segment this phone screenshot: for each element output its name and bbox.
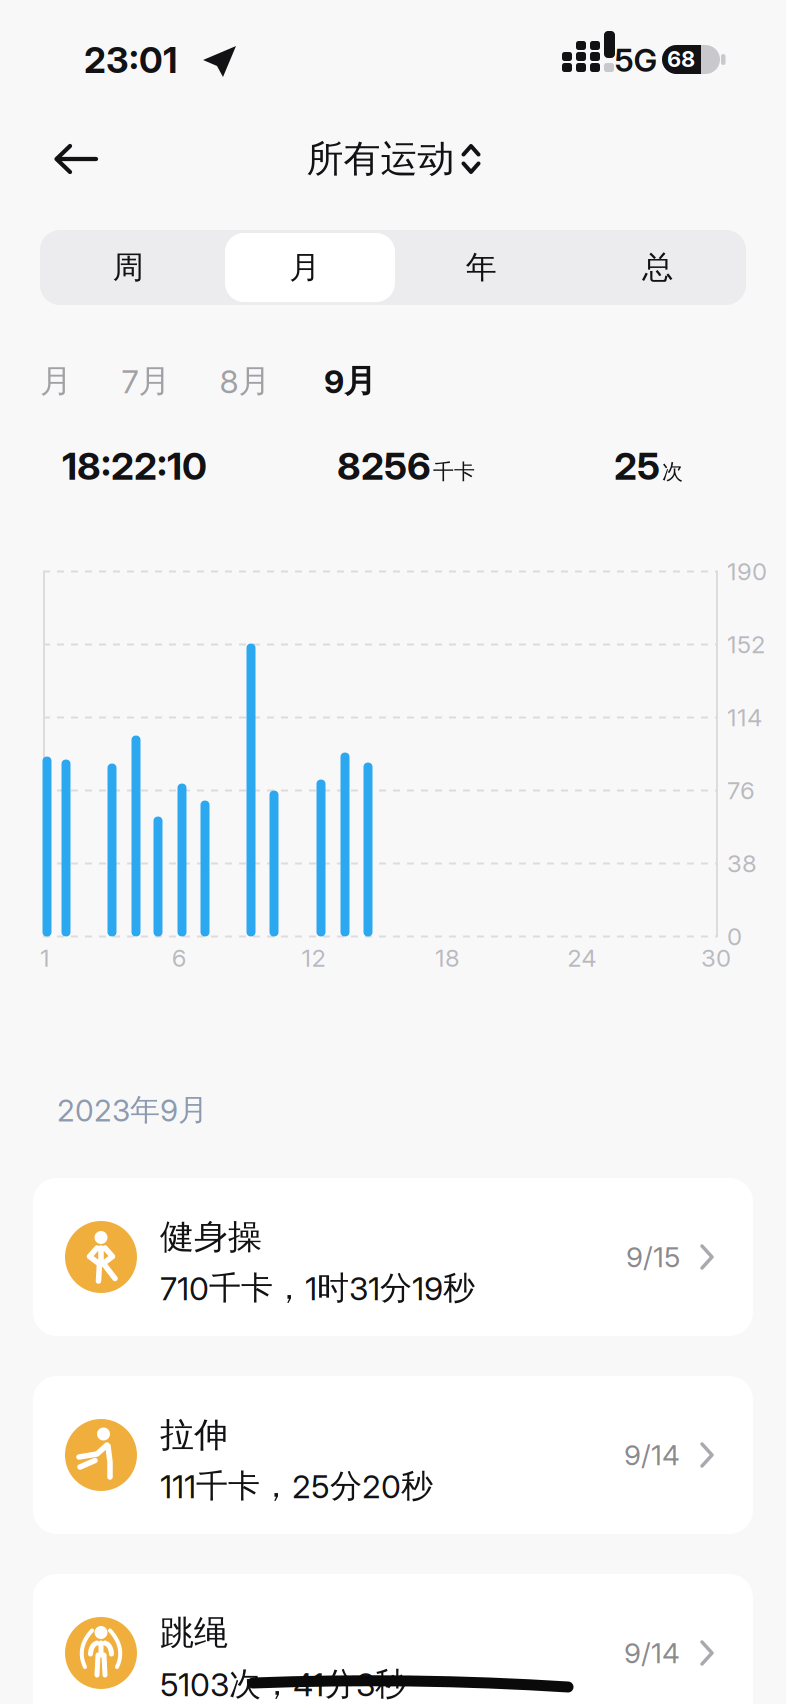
button[interactable]: Back: [0, 0, 120, 120]
staticText: 1: [40, 943, 50, 972]
button[interactable]: 总: [569, 230, 746, 305]
staticText: 24: [567, 943, 596, 972]
staticText: 30: [701, 943, 731, 972]
staticText: 拉伸: [160, 1414, 228, 1456]
staticText: 8256: [337, 443, 431, 489]
staticText: 18:22:10: [62, 443, 207, 489]
button[interactable]: 年: [393, 230, 569, 305]
staticText: 0: [727, 922, 742, 951]
staticText: 18: [435, 943, 460, 972]
staticText: 所有运动: [306, 136, 454, 182]
staticText: 次: [662, 458, 683, 485]
staticText: 月: [289, 248, 320, 287]
staticText: 111千卡，25分20秒: [160, 1466, 433, 1506]
staticText: 152: [727, 630, 765, 659]
staticText: 9/14: [624, 1438, 680, 1472]
button[interactable]: 跳绳: [33, 1574, 753, 1704]
staticText: 5G: [614, 41, 657, 79]
staticText: 9/15: [626, 1240, 680, 1274]
staticText: 周: [113, 248, 144, 287]
staticText: 7月: [121, 361, 170, 401]
staticText: 8月: [219, 361, 270, 401]
staticText: 9月: [324, 361, 376, 401]
staticText: 月: [40, 361, 72, 401]
staticText: 23:01: [84, 38, 177, 82]
staticText: 健身操: [160, 1216, 262, 1258]
button[interactable]: 周: [40, 230, 216, 305]
staticText: 12: [301, 943, 325, 972]
staticText: 跳绳: [160, 1612, 228, 1654]
staticText: 5103次，41分3秒: [160, 1664, 407, 1704]
staticText: 2023年9月: [57, 1091, 208, 1129]
staticText: 114: [727, 703, 762, 732]
staticText: 千卡: [433, 458, 475, 485]
staticText: 6: [172, 943, 187, 972]
staticText: 总: [642, 248, 673, 287]
staticText: 38: [727, 849, 757, 878]
staticText: 76: [727, 776, 755, 805]
button[interactable]: 8月: [197, 358, 293, 404]
button[interactable]: 健身操: [33, 1178, 753, 1336]
button[interactable]: 所有运动: [306, 136, 479, 182]
staticText: 年: [466, 248, 497, 287]
staticText: 710千卡，1时31分19秒: [160, 1268, 475, 1308]
staticText: 68: [667, 46, 695, 72]
button[interactable]: 9月: [302, 358, 398, 404]
button[interactable]: 7月: [98, 358, 194, 404]
button[interactable]: 月: [216, 230, 393, 305]
staticText: 25: [614, 443, 660, 489]
staticText: 190: [727, 557, 767, 586]
button[interactable]: 拉伸: [33, 1376, 753, 1534]
staticText: 9/14: [624, 1636, 680, 1670]
